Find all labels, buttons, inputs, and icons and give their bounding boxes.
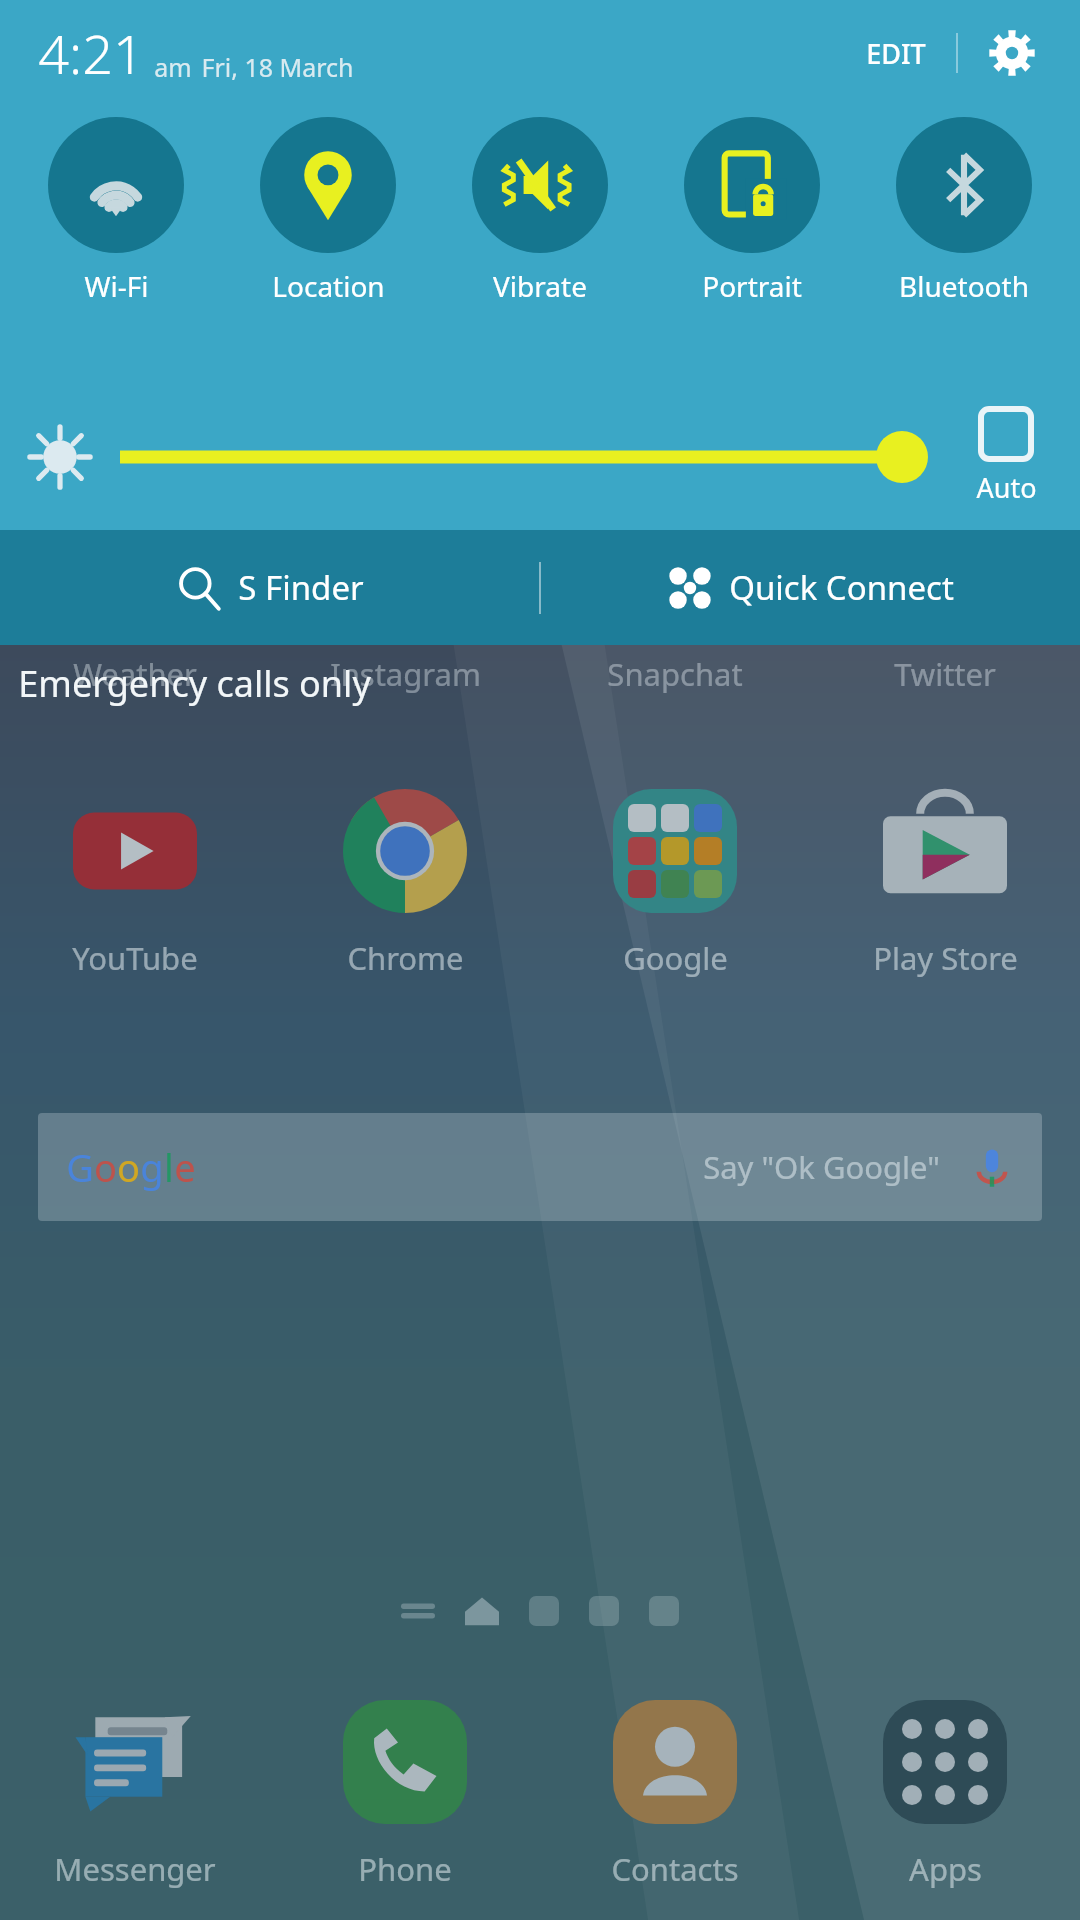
button[interactable]: G <box>38 1113 1042 1221</box>
staticText: Say "Ok Google" <box>703 1146 940 1188</box>
button[interactable]: YouTube <box>0 777 270 983</box>
staticText: EDIT <box>866 35 926 72</box>
button[interactable]: S Finder <box>0 530 539 645</box>
staticText: Vibrate <box>493 267 587 305</box>
button[interactable]: Brightness <box>0 402 120 512</box>
staticText: Fri, 18 March <box>201 50 354 84</box>
staticText: Location <box>272 267 385 305</box>
button[interactable]: Apps <box>810 1688 1080 1894</box>
staticText: o <box>117 1141 140 1193</box>
staticText: o <box>94 1141 117 1193</box>
staticText: Bluetooth <box>899 267 1029 305</box>
staticText: Messenger <box>54 1848 216 1890</box>
button[interactable]: Portrait <box>646 111 858 311</box>
button[interactable]: Bluetooth <box>858 111 1070 311</box>
button[interactable]: Vibrate <box>434 111 646 311</box>
staticText: 4:21 <box>38 16 144 90</box>
staticText: YouTube <box>72 937 198 979</box>
staticText: G <box>66 1141 94 1193</box>
staticText: Portrait <box>702 267 802 305</box>
button[interactable]: Phone <box>270 1688 540 1894</box>
staticText: g <box>140 1141 164 1193</box>
staticText: Play Store <box>873 937 1018 979</box>
staticText: Contacts <box>611 1848 739 1890</box>
staticText: Twitter <box>894 653 996 695</box>
button[interactable]: Wi-Fi <box>10 111 222 311</box>
button[interactable]: Google <box>540 777 810 983</box>
staticText: Instagram <box>330 653 481 695</box>
button[interactable]: Contacts <box>540 1688 810 1894</box>
staticText: Emergency calls only <box>18 659 371 708</box>
button[interactable]: Messenger <box>0 1688 270 1894</box>
staticText: Weather <box>73 653 197 695</box>
staticText: Apps <box>909 1848 982 1890</box>
staticText: S Finder <box>238 565 364 610</box>
button[interactable]: Chrome <box>270 777 540 983</box>
staticText: Google <box>623 937 728 979</box>
staticText: Chrome <box>347 937 464 979</box>
button[interactable]: Quick Connect <box>541 530 1080 645</box>
staticText: Wi-Fi <box>84 267 149 305</box>
staticText: Quick Connect <box>729 565 954 610</box>
button[interactable]: Settings <box>980 21 1044 85</box>
button[interactable]: Play Store <box>810 777 1080 983</box>
staticText: Phone <box>358 1848 452 1890</box>
button[interactable]: Auto <box>946 409 1066 506</box>
button[interactable] <box>120 402 920 512</box>
button[interactable]: Location <box>222 111 434 311</box>
staticText: Snapchat <box>607 653 743 695</box>
staticText: Auto <box>976 469 1037 506</box>
staticText: l <box>164 1141 174 1193</box>
staticText: e <box>174 1141 196 1193</box>
staticText: am <box>154 50 192 84</box>
button[interactable]: EDIT <box>852 25 940 82</box>
